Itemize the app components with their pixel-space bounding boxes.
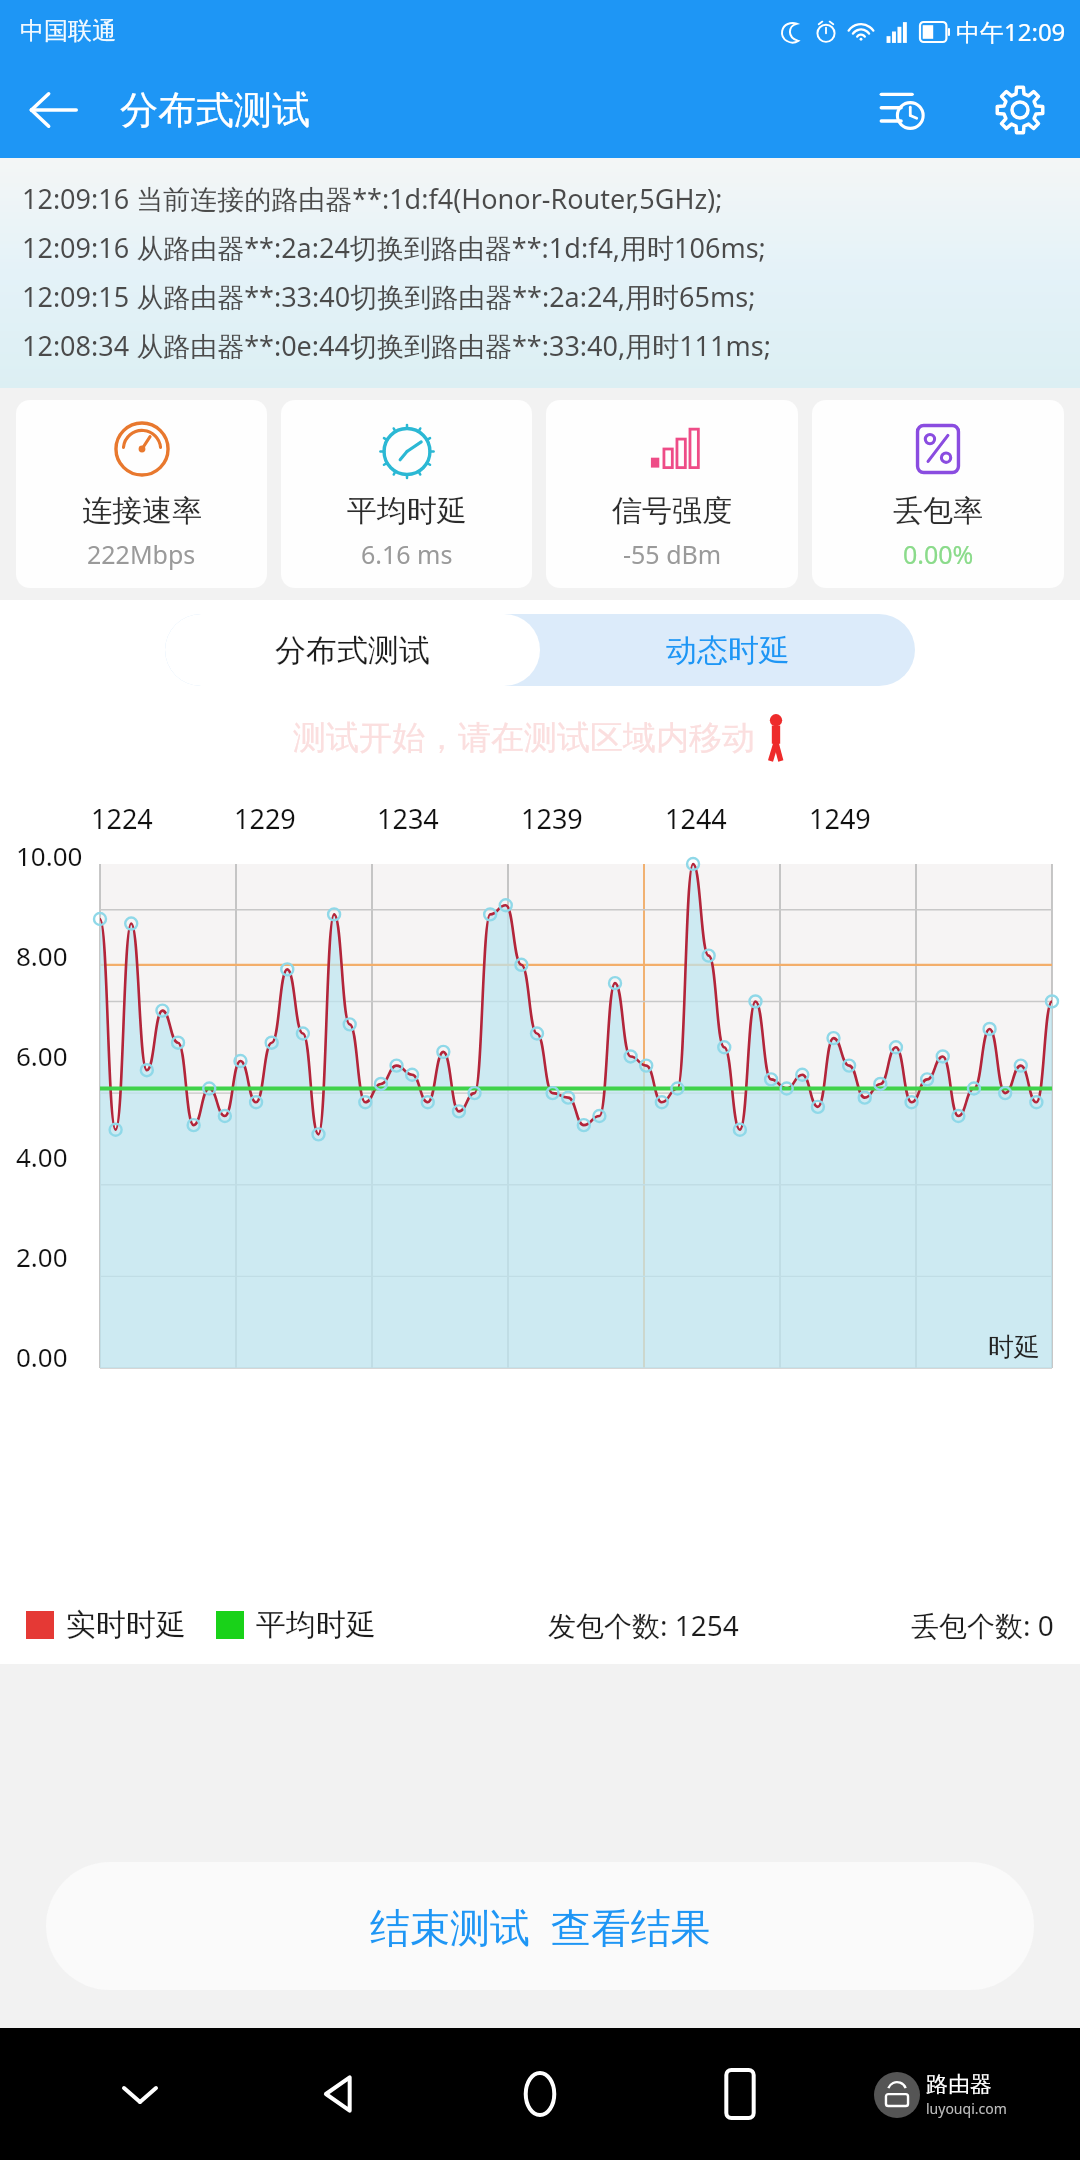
button[interactable]: Back	[305, 2059, 375, 2129]
button[interactable]: 丢包率	[812, 400, 1064, 588]
staticText: 1229	[234, 800, 296, 837]
staticText: 结束测试 查看结果	[370, 1899, 711, 1954]
staticText: 中国联通	[20, 16, 116, 46]
staticText: 12:09:16 当前连接的路由器**:1d:f4(Honor-Router,5…	[22, 180, 723, 217]
staticText: 中午12:09	[956, 15, 1066, 48]
staticText: 12:08:34 从路由器**:0e:44切换到路由器**:33:40,用时11…	[22, 327, 771, 364]
staticText: 1224	[91, 800, 153, 837]
staticText: 发包个数: 1254	[548, 1606, 739, 1644]
staticText: 动态时延	[666, 631, 790, 670]
staticText: 路由器	[926, 2071, 992, 2099]
staticText: 丢包率	[893, 492, 983, 530]
staticText: 12:09:15 从路由器**:33:40切换到路由器**:2a:24,用时65…	[22, 278, 756, 315]
button[interactable]: Hide	[110, 2064, 170, 2124]
button[interactable]: Home	[505, 2059, 575, 2129]
staticText: 8.00	[16, 938, 68, 973]
staticText: 实时时延	[66, 1606, 186, 1644]
button[interactable]: 连接速率	[16, 400, 267, 588]
staticText: 平均时延	[347, 492, 467, 530]
staticText: 0.00%	[903, 537, 974, 571]
staticText: 信号强度	[612, 492, 732, 530]
staticText: 4.00	[16, 1139, 68, 1174]
button[interactable]: 分布式测试	[165, 614, 540, 686]
staticText: 0.00	[16, 1339, 68, 1374]
staticText: 6.16 ms	[361, 537, 453, 571]
button[interactable]: History	[872, 80, 932, 140]
staticText: 1249	[809, 800, 871, 837]
button[interactable]: Settings	[990, 80, 1050, 140]
staticText: 丢包个数: 0	[911, 1606, 1054, 1644]
button[interactable]: 结束测试 查看结果	[46, 1862, 1034, 1990]
staticText: 时延	[988, 1331, 1040, 1364]
button[interactable]: Back	[26, 83, 80, 137]
staticText: 连接速率	[82, 492, 202, 530]
staticText: 1244	[665, 800, 727, 837]
button[interactable]: 动态时延	[540, 614, 915, 686]
button[interactable]: Recents	[705, 2059, 775, 2129]
staticText: 12:09:16 从路由器**:2a:24切换到路由器**:1d:f4,用时10…	[22, 229, 766, 266]
staticText: 10.00	[16, 838, 83, 873]
staticText: 分布式测试	[275, 631, 430, 670]
button[interactable]: 平均时延	[281, 400, 532, 588]
staticText: 2.00	[16, 1239, 68, 1274]
staticText: 分布式测试	[120, 86, 310, 134]
staticText: 1239	[521, 800, 583, 837]
staticText: luyouqi.com	[926, 2099, 1007, 2118]
staticText: 测试开始，请在测试区域内移动	[293, 717, 755, 759]
staticText: 222Mbps	[87, 537, 196, 571]
staticText: 平均时延	[256, 1606, 376, 1644]
staticText: 6.00	[16, 1038, 68, 1073]
staticText: 1234	[377, 800, 439, 837]
staticText: -55 dBm	[623, 537, 722, 571]
button[interactable]: 信号强度	[546, 400, 798, 588]
